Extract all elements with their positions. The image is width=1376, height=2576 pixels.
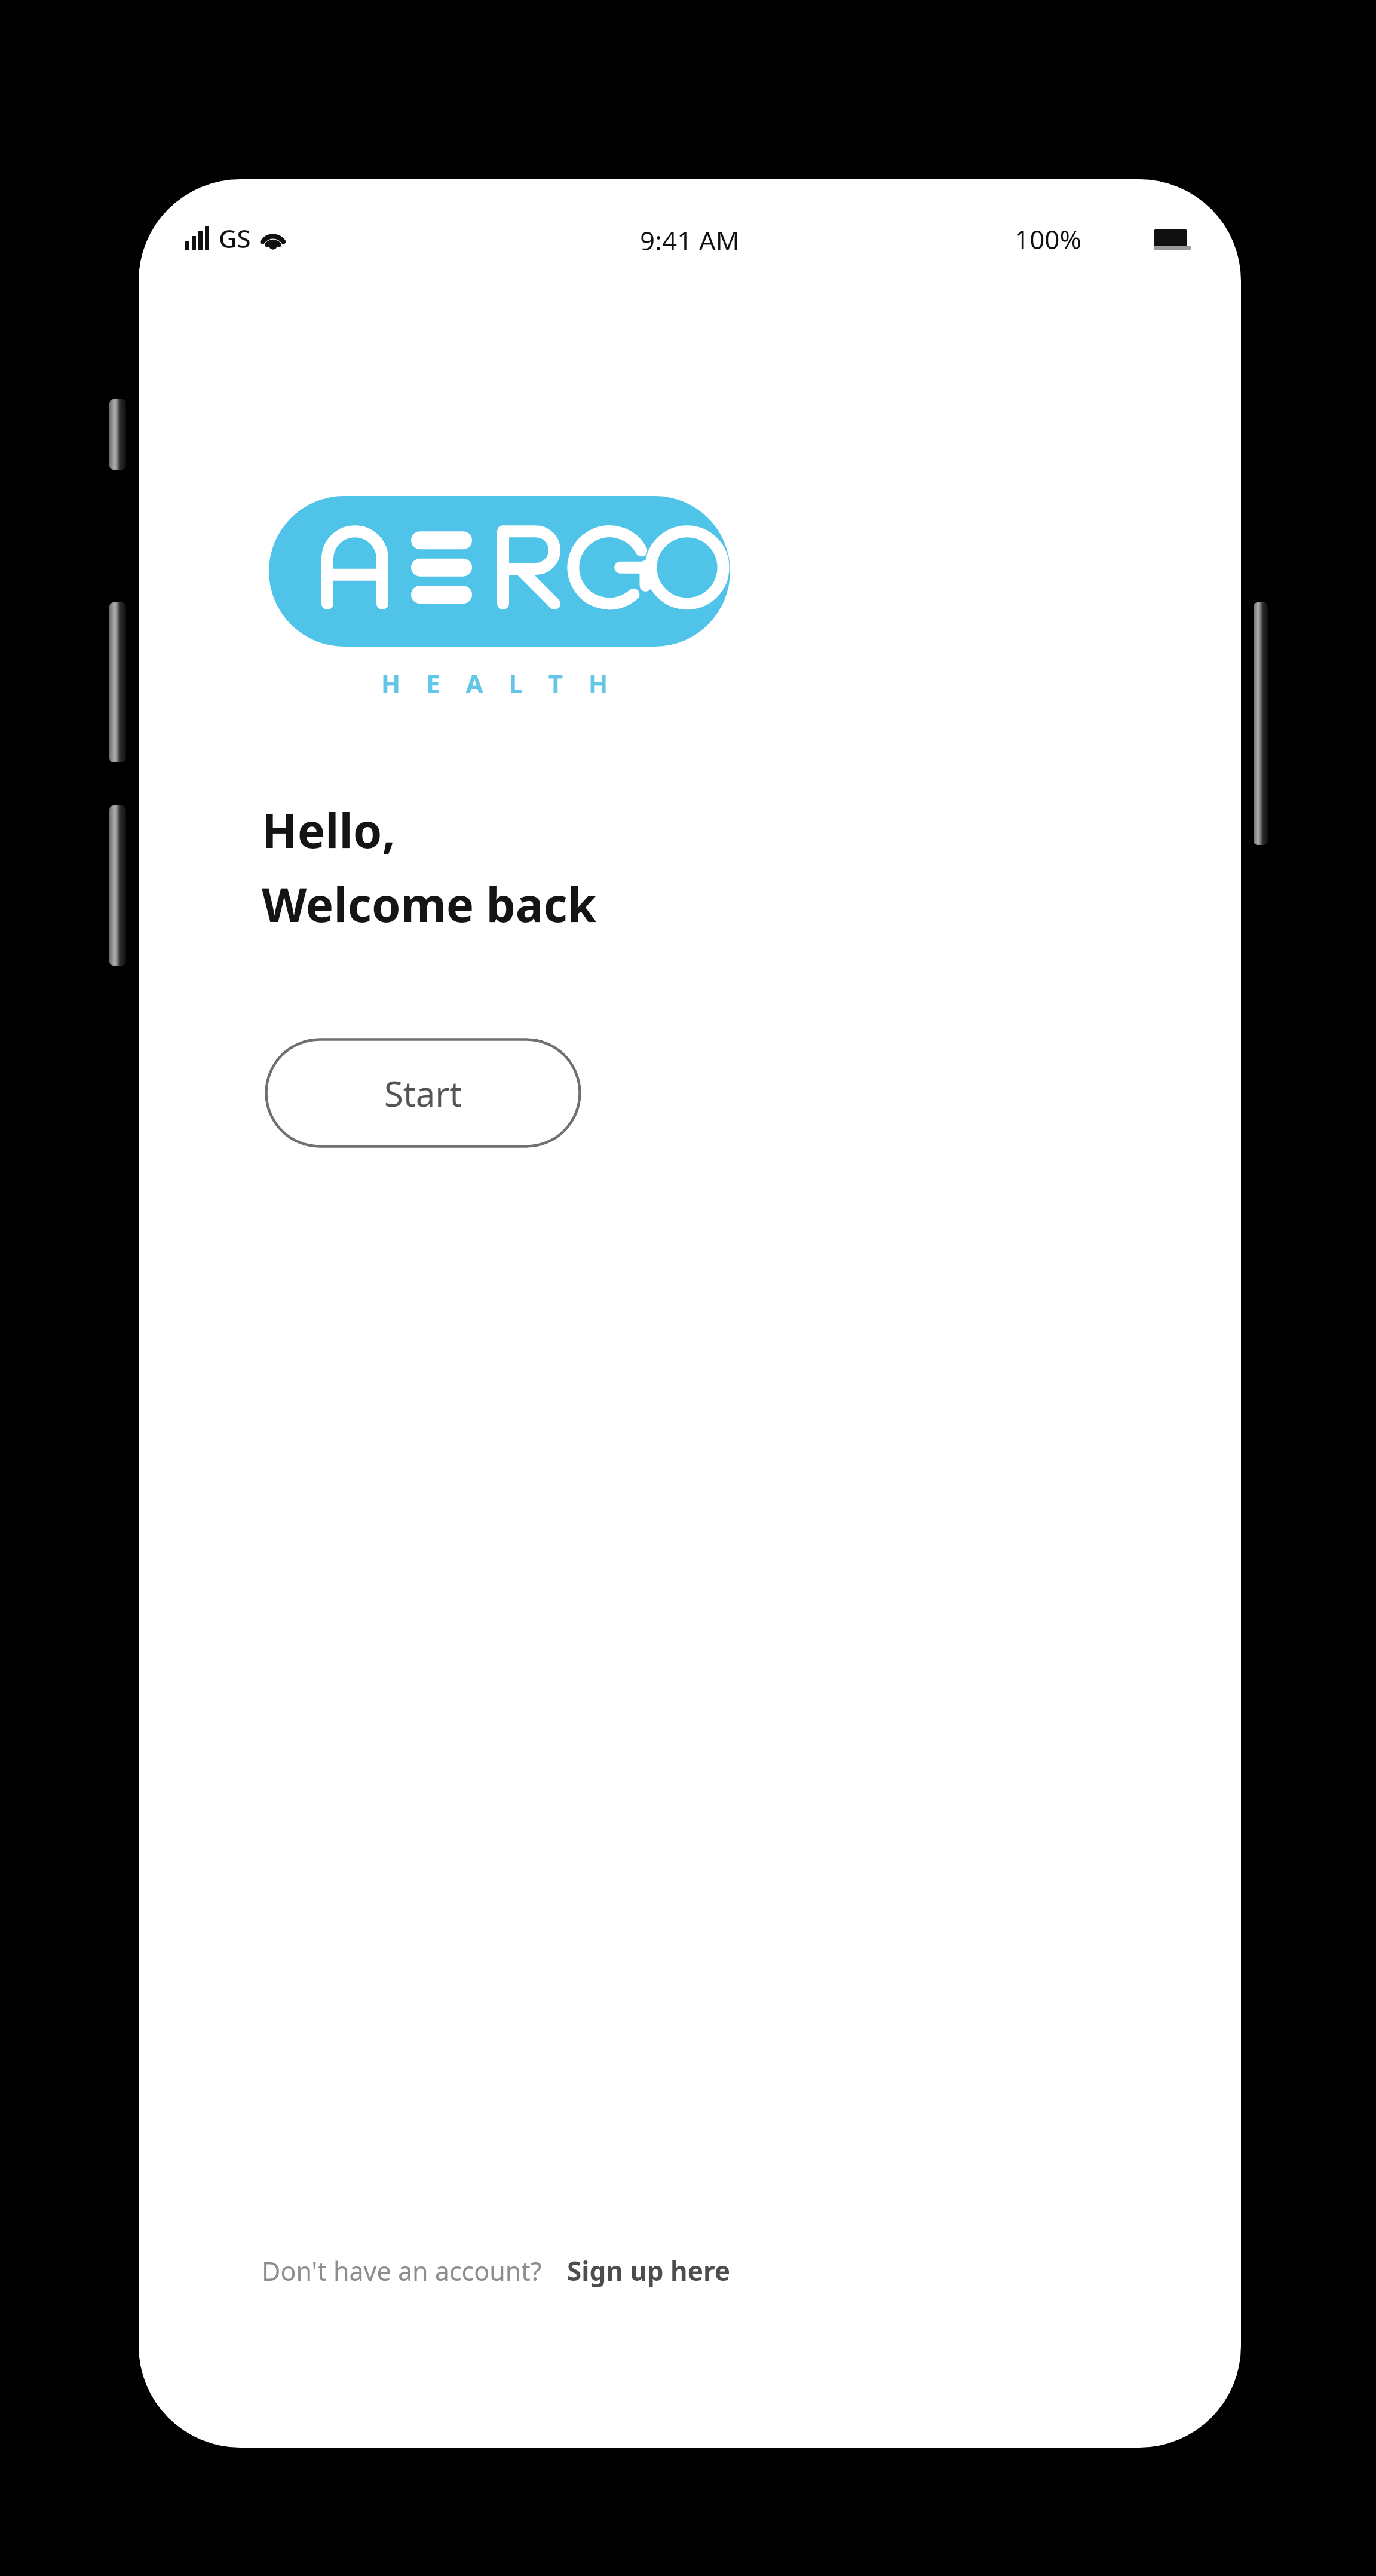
other: Aergo Health logo <box>269 496 730 647</box>
staticText: GS <box>219 221 251 255</box>
staticText: Start <box>384 1070 462 1117</box>
staticText: Sign up here <box>567 2253 731 2289</box>
button[interactable]: Sign up here <box>563 2247 734 2295</box>
staticText: Hello, <box>262 798 396 862</box>
staticText: Don't have an account? <box>262 2253 542 2289</box>
staticText: Welcome back <box>262 872 597 936</box>
staticText: H E A L T H <box>381 666 618 700</box>
staticText: 9:41 AM <box>640 222 740 258</box>
staticText: 100% <box>1015 221 1082 257</box>
button[interactable]: Start <box>265 1038 581 1148</box>
